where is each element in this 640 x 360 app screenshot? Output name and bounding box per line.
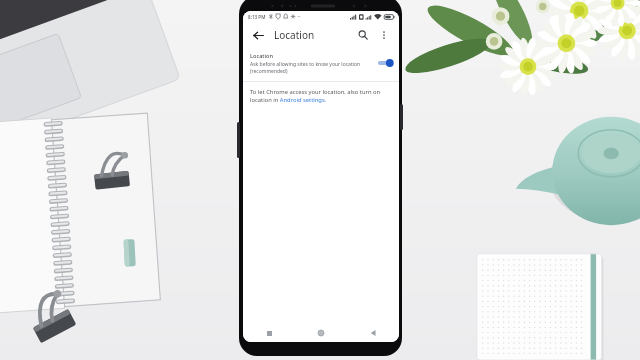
button[interactable]: Home	[295, 324, 347, 342]
button[interactable]: Search	[354, 26, 372, 44]
staticText: Ask before allowing sites to know your l…	[250, 61, 372, 74]
button[interactable]: Recent apps	[243, 324, 295, 342]
staticText: Location	[274, 28, 315, 42]
button[interactable]: Location	[243, 48, 399, 79]
button[interactable]: Back	[347, 324, 399, 342]
staticText: Location	[250, 52, 273, 60]
staticText: To let Chrome access your location, also…	[250, 88, 391, 104]
button[interactable]: More options	[375, 26, 393, 44]
button[interactable]: Back	[249, 26, 267, 44]
staticText: 8:13 PM	[248, 14, 266, 20]
